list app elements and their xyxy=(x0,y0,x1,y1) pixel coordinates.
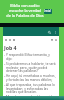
button[interactable]: 4 xyxy=(4,83,56,93)
staticText: 2 xyxy=(4,62,6,65)
staticText: Job 4 xyxy=(4,44,17,51)
button[interactable]: Biblia con audio: escuche la verdad de l… xyxy=(0,0,64,23)
button[interactable]: Audio xyxy=(12,38,16,42)
staticText: 3 xyxy=(4,74,6,77)
staticText: He aquí, tú enseñabas a muchos, y fortal… xyxy=(6,74,56,81)
button[interactable]: More options xyxy=(52,29,58,35)
staticText: Y respondió Elifaz temanita, y dijo: xyxy=(6,53,56,60)
button[interactable]: Text settings xyxy=(8,38,12,42)
button[interactable]: 2 xyxy=(4,62,56,72)
button[interactable]: 5 xyxy=(4,95,56,98)
button[interactable]: Share xyxy=(54,38,58,42)
staticText: 1 xyxy=(4,53,6,56)
staticText: 5 xyxy=(4,95,6,98)
staticText: Biblia con audio: escuche la verdad de l… xyxy=(6,3,44,18)
button[interactable]: Bookmark xyxy=(50,38,54,42)
button[interactable]: Search xyxy=(46,29,52,35)
staticText: Mas ahora que el mal ha venido sobre ti,… xyxy=(6,95,56,98)
staticText: 4 xyxy=(4,83,6,86)
button[interactable]: Instalar xyxy=(44,9,52,14)
button[interactable]: 1 xyxy=(4,53,56,60)
button[interactable]: 3 xyxy=(4,74,56,81)
button[interactable]: Previous chapter xyxy=(4,38,8,42)
staticText: Instalar xyxy=(44,9,52,14)
staticText: Si probáremos a hablarte, te será molest… xyxy=(6,62,56,72)
staticText: Al que tropezaba, tus palabras lo levant… xyxy=(6,83,56,93)
